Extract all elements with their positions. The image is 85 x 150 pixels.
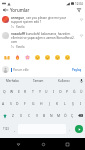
staticText: R: [24, 89, 27, 94]
staticText: S: [10, 101, 12, 106]
button[interactable]: M: [55, 109, 62, 122]
staticText: D: [16, 101, 19, 106]
staticText: annegun_ can you please give me your sup…: [11, 16, 77, 24]
staticText: Tamam: [33, 79, 44, 83]
button[interactable]: B: [41, 109, 48, 122]
button[interactable]: nasadufff bunudahil bakarsanız, hazırdım…: [2, 32, 84, 49]
button[interactable]: Backspace: [76, 109, 85, 122]
staticText: T: [32, 89, 34, 94]
button[interactable]: D: [14, 97, 21, 109]
staticText: B: [43, 113, 46, 118]
staticText: I: [53, 89, 55, 94]
staticText: Yanıtla: [16, 45, 25, 49]
button[interactable]: W: [8, 85, 15, 97]
button[interactable]: Voice input: [77, 77, 85, 85]
button[interactable]: Send: [73, 123, 85, 135]
button[interactable]: L: [61, 97, 69, 109]
button[interactable]: K: [53, 97, 61, 109]
button[interactable]: Q: [0, 85, 8, 97]
button[interactable]: Raised hands: [2, 52, 12, 62]
staticText: Y: [39, 89, 41, 94]
staticText: J: [49, 101, 50, 106]
button[interactable]: Sparkles: [22, 52, 32, 62]
button[interactable]: wow: [52, 52, 62, 62]
button[interactable]: Ü: [78, 85, 85, 97]
button[interactable]: F: [21, 97, 29, 109]
staticText: F: [24, 101, 26, 106]
button[interactable]: Ö: [62, 109, 69, 122]
button[interactable]: G: [29, 97, 37, 109]
staticText: O: [59, 89, 62, 94]
button[interactable]: Tamam: [25, 77, 51, 85]
button[interactable]: J: [45, 97, 53, 109]
button[interactable]: Fire: [12, 52, 22, 62]
button[interactable]: Yorum ekle: [11, 68, 70, 72]
staticText: V: [36, 113, 39, 118]
button[interactable]: Comma: [11, 123, 18, 135]
button[interactable]: Ç: [69, 109, 76, 122]
button[interactable]: I: [77, 97, 85, 109]
button[interactable]: A: [0, 97, 7, 109]
button[interactable]: annegun_ can you please give me your sup…: [2, 16, 84, 29]
staticText: A: [2, 101, 5, 106]
staticText: Kullanıcı: [58, 79, 70, 83]
staticText: Paylaş: [72, 68, 82, 72]
button[interactable]: H: [37, 97, 45, 109]
button[interactable]: Kullanıcı: [51, 77, 77, 85]
staticText: .: [69, 127, 70, 132]
button[interactable]: Recents: [60, 138, 74, 150]
button[interactable]: sad: [62, 52, 72, 62]
staticText: M: [57, 113, 61, 118]
button[interactable]: Like: [78, 16, 84, 23]
button[interactable]: V: [33, 109, 41, 122]
staticText: X: [20, 113, 22, 118]
staticText: Ç: [71, 113, 74, 118]
button[interactable]: Z: [9, 109, 17, 122]
staticText: I: [80, 101, 82, 106]
button[interactable]: P: [64, 85, 71, 97]
staticText: Z: [12, 113, 14, 118]
button[interactable]: Shift: [0, 109, 9, 122]
staticText: W: [10, 89, 14, 94]
button[interactable]: laugh: [32, 52, 42, 62]
button[interactable]: U: [43, 85, 50, 97]
button[interactable]: O: [57, 85, 64, 97]
button[interactable]: S: [7, 97, 14, 109]
button[interactable]: E: [15, 85, 22, 97]
button[interactable]: N: [48, 109, 55, 122]
staticText: Ğ: [73, 89, 76, 94]
staticText: ,: [14, 127, 15, 132]
button[interactable]: Filter: [74, 7, 84, 13]
button[interactable]: smile: [42, 52, 52, 62]
button[interactable]: R: [22, 85, 29, 97]
button[interactable]: Merhaba: [0, 77, 25, 85]
staticText: P: [66, 89, 69, 94]
button[interactable]: Symbols: [0, 123, 11, 135]
button[interactable]: Ğ: [71, 85, 78, 97]
staticText: L: [64, 101, 66, 106]
staticText: 12:04: [75, 2, 83, 6]
button[interactable]: Back: [11, 138, 25, 150]
staticText: C: [28, 113, 31, 118]
staticText: Yanıtla: [16, 25, 25, 29]
button[interactable]: Home: [36, 138, 50, 150]
staticText: N: [50, 113, 53, 118]
button[interactable]: Ş: [69, 97, 77, 109]
button[interactable]: Paylaş: [71, 68, 83, 72]
button[interactable]: I: [50, 85, 57, 97]
button[interactable]: X: [17, 109, 25, 122]
button[interactable]: Back: [0, 7, 10, 13]
button[interactable]: Y: [36, 85, 43, 97]
staticText: H: [40, 101, 43, 106]
staticText: E: [18, 89, 20, 94]
button[interactable]: C: [25, 109, 33, 122]
button[interactable]: T: [29, 85, 36, 97]
staticText: G: [32, 101, 35, 106]
staticText: Q: [3, 89, 6, 94]
button[interactable]: Like: [78, 32, 84, 39]
staticText: Ü: [80, 89, 83, 94]
staticText: nasadufff bunudahil bakarsanız, hazırdım…: [11, 32, 77, 44]
staticText: Ş: [72, 101, 74, 106]
